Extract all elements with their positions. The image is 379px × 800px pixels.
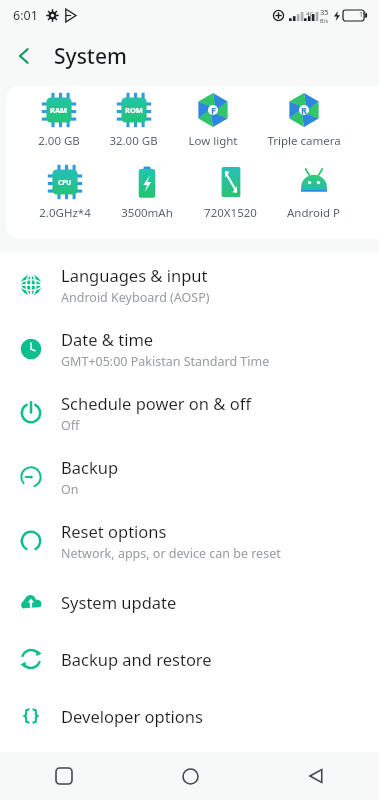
staticText: Android Keyboard (AOSP) <box>61 289 210 306</box>
staticText: Date & time <box>61 328 154 350</box>
staticText: Backup <box>61 456 119 478</box>
staticText: 3500mAh <box>121 205 173 221</box>
staticText: System update <box>61 591 177 613</box>
staticText: Reset options <box>61 520 167 542</box>
staticText: Backup and restore <box>61 648 212 670</box>
staticText: Triple camera <box>267 133 341 149</box>
staticText: CPU <box>58 178 72 187</box>
button[interactable]: R <box>267 92 341 149</box>
button[interactable]: RAM <box>38 92 80 149</box>
button[interactable]: Languages & input <box>0 253 379 317</box>
staticText: RAM <box>50 105 68 115</box>
button[interactable]: ROM <box>109 92 158 149</box>
button[interactable]: Recents <box>0 752 127 800</box>
staticText: ROM <box>125 105 143 115</box>
button[interactable]: Back <box>253 752 379 800</box>
button[interactable]: Home <box>127 752 253 800</box>
staticText: Off <box>61 417 80 434</box>
button[interactable]: Reset options <box>0 509 379 573</box>
button[interactable]: 3500mAh <box>121 164 173 221</box>
staticText: On <box>61 481 79 498</box>
button[interactable]: Schedule power on & off <box>0 381 379 445</box>
staticText: 32.00 GB <box>109 133 158 149</box>
staticText: F <box>211 104 216 116</box>
staticText: Developer options <box>61 705 203 727</box>
staticText: System <box>54 42 127 71</box>
staticText: GMT+05:00 Pakistan Standard Time <box>61 353 270 370</box>
button[interactable]: Date & time <box>0 317 379 381</box>
button[interactable]: Backup <box>0 445 379 509</box>
button[interactable]: F <box>188 92 238 149</box>
staticText: 2.00 GB <box>38 133 80 149</box>
button[interactable]: 720X1520 <box>204 164 257 221</box>
staticText: 35 <box>320 7 329 17</box>
staticText: 4G <box>306 10 314 18</box>
staticText: Low light <box>188 133 238 149</box>
staticText: 720X1520 <box>204 205 257 221</box>
staticText: 2.0GHz*4 <box>39 205 91 221</box>
button[interactable]: CPU <box>39 164 91 221</box>
button[interactable]: Developer options <box>0 687 379 744</box>
staticText: Languages & input <box>61 264 208 286</box>
staticText: Android P <box>287 205 340 221</box>
staticText: B/s <box>320 17 329 24</box>
staticText: Schedule power on & off <box>61 392 252 414</box>
staticText: R <box>301 104 307 116</box>
staticText: 19 <box>359 10 368 20</box>
button[interactable]: Backup and restore <box>0 630 379 687</box>
button[interactable]: System update <box>0 573 379 630</box>
button[interactable]: Back <box>0 30 48 82</box>
staticText: 6:01 <box>13 7 38 24</box>
staticText: Network, apps, or device can be reset <box>61 545 281 562</box>
button[interactable]: Android P <box>287 164 340 221</box>
